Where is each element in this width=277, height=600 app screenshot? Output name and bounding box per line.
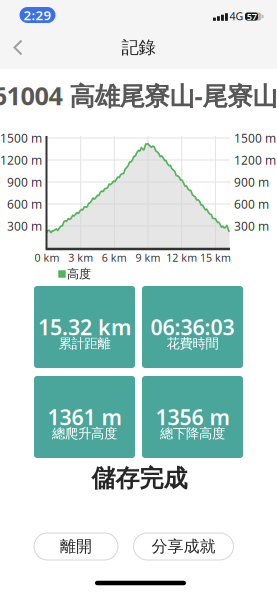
staticText: 分享成就	[151, 537, 215, 556]
staticText: 6 km	[102, 250, 127, 265]
staticText: 總爬升高度	[52, 425, 117, 442]
staticText: 12 km	[166, 250, 197, 265]
staticText: 300 m	[7, 218, 42, 234]
staticText: 1356 m	[155, 403, 229, 431]
staticText: 1200 m	[0, 152, 42, 168]
staticText: 2:29	[23, 6, 51, 24]
staticText: 1200 m	[234, 152, 276, 168]
staticText: 離開	[60, 537, 92, 556]
staticText: 1500 m	[0, 130, 42, 146]
staticText: 300 m	[234, 218, 269, 234]
staticText: 15 km	[200, 250, 231, 265]
staticText: 06:36:03	[150, 313, 234, 341]
button[interactable]: 離開	[34, 533, 118, 560]
staticText: 900 m	[234, 174, 269, 190]
button[interactable]: Back	[3, 32, 33, 62]
staticText: 累計距離	[58, 335, 110, 352]
staticText: 600 m	[7, 196, 42, 212]
staticText: 15.32 km	[38, 313, 131, 341]
staticText: 花費時間	[166, 335, 218, 352]
button[interactable]: 分享成就	[133, 533, 233, 560]
staticText: 0 km	[34, 250, 59, 265]
staticText: 記錄	[121, 37, 155, 58]
staticText: 高度	[67, 267, 91, 281]
staticText: 4G	[229, 9, 243, 23]
staticText: 900 m	[7, 174, 42, 190]
staticText: 儲存完成	[91, 464, 187, 493]
staticText: 61004 高雄尾寮山-尾寮山西南峰	[0, 79, 277, 112]
staticText: 3 km	[68, 250, 93, 265]
staticText: 1361 m	[47, 403, 121, 431]
staticText: 總下降高度	[160, 425, 225, 442]
staticText: 9 km	[135, 250, 160, 265]
staticText: 600 m	[234, 196, 269, 212]
staticText: 57	[247, 10, 257, 23]
staticText: 1500 m	[234, 130, 276, 146]
